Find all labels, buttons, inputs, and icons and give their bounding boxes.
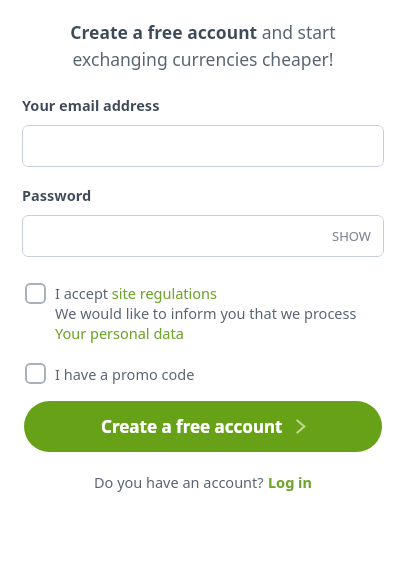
staticText: Log in <box>268 472 312 492</box>
staticText: We would like to inform you that we proc… <box>55 303 357 323</box>
button[interactable]: I have a promo code <box>0 363 406 384</box>
staticText: I accept site regulations <box>55 283 217 303</box>
staticText: Create a free account <box>101 415 283 438</box>
button[interactable]: Your email address <box>22 125 384 167</box>
button[interactable]: I accept site regulations <box>0 283 406 343</box>
button[interactable]: SHOW <box>319 217 384 255</box>
staticText: SHOW <box>332 227 371 245</box>
button[interactable]: Log in <box>268 472 312 492</box>
staticText: Create a free account and start exchangi… <box>30 20 376 71</box>
staticText: Password <box>22 185 92 205</box>
staticText: Your email address <box>22 95 160 115</box>
button[interactable]: Your personal data <box>55 323 184 343</box>
button[interactable]: I have a promo code <box>25 363 46 384</box>
button[interactable]: Create a free account <box>24 401 382 452</box>
button[interactable]: I accept site regulations <box>25 283 46 304</box>
staticText: Do you have an account? <box>94 472 268 492</box>
button[interactable]: Password <box>22 215 384 257</box>
staticText: I have a promo code <box>55 364 195 384</box>
